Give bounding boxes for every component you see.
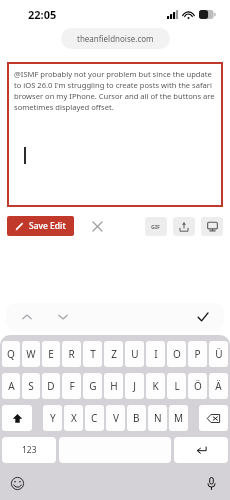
button[interactable]: V <box>106 405 125 431</box>
button[interactable]: Previous field <box>16 306 38 328</box>
button[interactable]: M <box>169 405 188 431</box>
button[interactable]: @ISMF probably not your problem but sinc… <box>7 62 223 207</box>
staticText: W <box>26 347 36 361</box>
staticText: Z <box>111 347 117 361</box>
button[interactable]: Return <box>174 437 228 463</box>
button[interactable]: Preview <box>201 217 223 236</box>
staticText: G <box>89 379 97 393</box>
staticText: T <box>90 347 96 361</box>
button[interactable]: Emoji <box>6 472 28 494</box>
button[interactable]: Ü <box>209 341 228 367</box>
button[interactable]: GIF <box>145 217 167 236</box>
button[interactable]: T <box>83 341 102 367</box>
button[interactable]: Ö <box>188 373 207 399</box>
button[interactable]: X <box>64 405 83 431</box>
button[interactable]: 123 <box>2 437 56 463</box>
staticText: Q <box>7 347 15 361</box>
staticText: A <box>8 379 15 393</box>
button[interactable]: A <box>2 373 20 399</box>
button[interactable]: Q <box>2 341 20 367</box>
staticText: Y <box>50 411 56 425</box>
button[interactable]: S <box>22 373 40 399</box>
button[interactable]: Backspace <box>199 405 228 431</box>
button[interactable]: Dictate <box>200 472 222 494</box>
staticText: L <box>174 379 180 393</box>
button[interactable]: O <box>167 341 186 367</box>
staticText: N <box>154 411 162 425</box>
staticText: J <box>133 379 136 393</box>
button[interactable]: Z <box>104 341 123 367</box>
button[interactable]: Y <box>43 405 62 431</box>
staticText: Ä <box>215 379 222 393</box>
button[interactable]: F <box>62 373 81 399</box>
staticText: M <box>174 411 184 425</box>
staticText: H <box>110 379 118 393</box>
button[interactable]: N <box>148 405 167 431</box>
button[interactable]: W <box>22 341 40 367</box>
staticText: S <box>28 379 34 393</box>
staticText: V <box>113 411 119 425</box>
staticText: K <box>152 379 159 393</box>
staticText: Save Edit <box>29 220 66 232</box>
button[interactable]: U <box>125 341 144 367</box>
button[interactable]: Done <box>192 306 214 328</box>
staticText: R <box>68 347 75 361</box>
staticText: C <box>91 411 98 425</box>
button[interactable]: K <box>146 373 165 399</box>
button[interactable]: D <box>42 373 60 399</box>
button[interactable]: B <box>127 405 146 431</box>
button[interactable]: H <box>104 373 123 399</box>
button[interactable]: J <box>125 373 144 399</box>
staticText: 22:05 <box>28 7 57 22</box>
staticText: GIF <box>151 223 161 230</box>
button[interactable]: theanfieldnoise.com <box>61 28 170 49</box>
staticText: O <box>173 347 181 361</box>
staticText: F <box>69 379 75 393</box>
staticText: U <box>131 347 139 361</box>
staticText: D <box>47 379 55 393</box>
staticText: E <box>48 347 54 361</box>
button[interactable]: Next field <box>52 306 74 328</box>
staticText: Ö <box>194 379 202 393</box>
button[interactable]: Save Edit <box>7 216 74 236</box>
button[interactable]: Cancel edit <box>88 217 106 235</box>
button[interactable]: C <box>85 405 104 431</box>
button[interactable]: Ä <box>209 373 228 399</box>
staticText: P <box>194 347 201 361</box>
button[interactable]: I <box>146 341 165 367</box>
button[interactable]: P <box>188 341 207 367</box>
button[interactable]: Shift <box>2 405 32 431</box>
staticText: Ü <box>215 347 223 361</box>
staticText: B <box>133 411 140 425</box>
staticText: X <box>71 411 77 425</box>
staticText: theanfieldnoise.com <box>77 33 154 44</box>
button[interactable]: E <box>42 341 60 367</box>
staticText: 123 <box>22 444 37 456</box>
staticText: @ISMF probably not your problem but sinc… <box>14 69 218 112</box>
button[interactable]: L <box>167 373 186 399</box>
staticText: I <box>154 347 158 361</box>
button[interactable]: G <box>83 373 102 399</box>
button[interactable]: Upload image <box>173 217 195 236</box>
button[interactable]: R <box>62 341 81 367</box>
